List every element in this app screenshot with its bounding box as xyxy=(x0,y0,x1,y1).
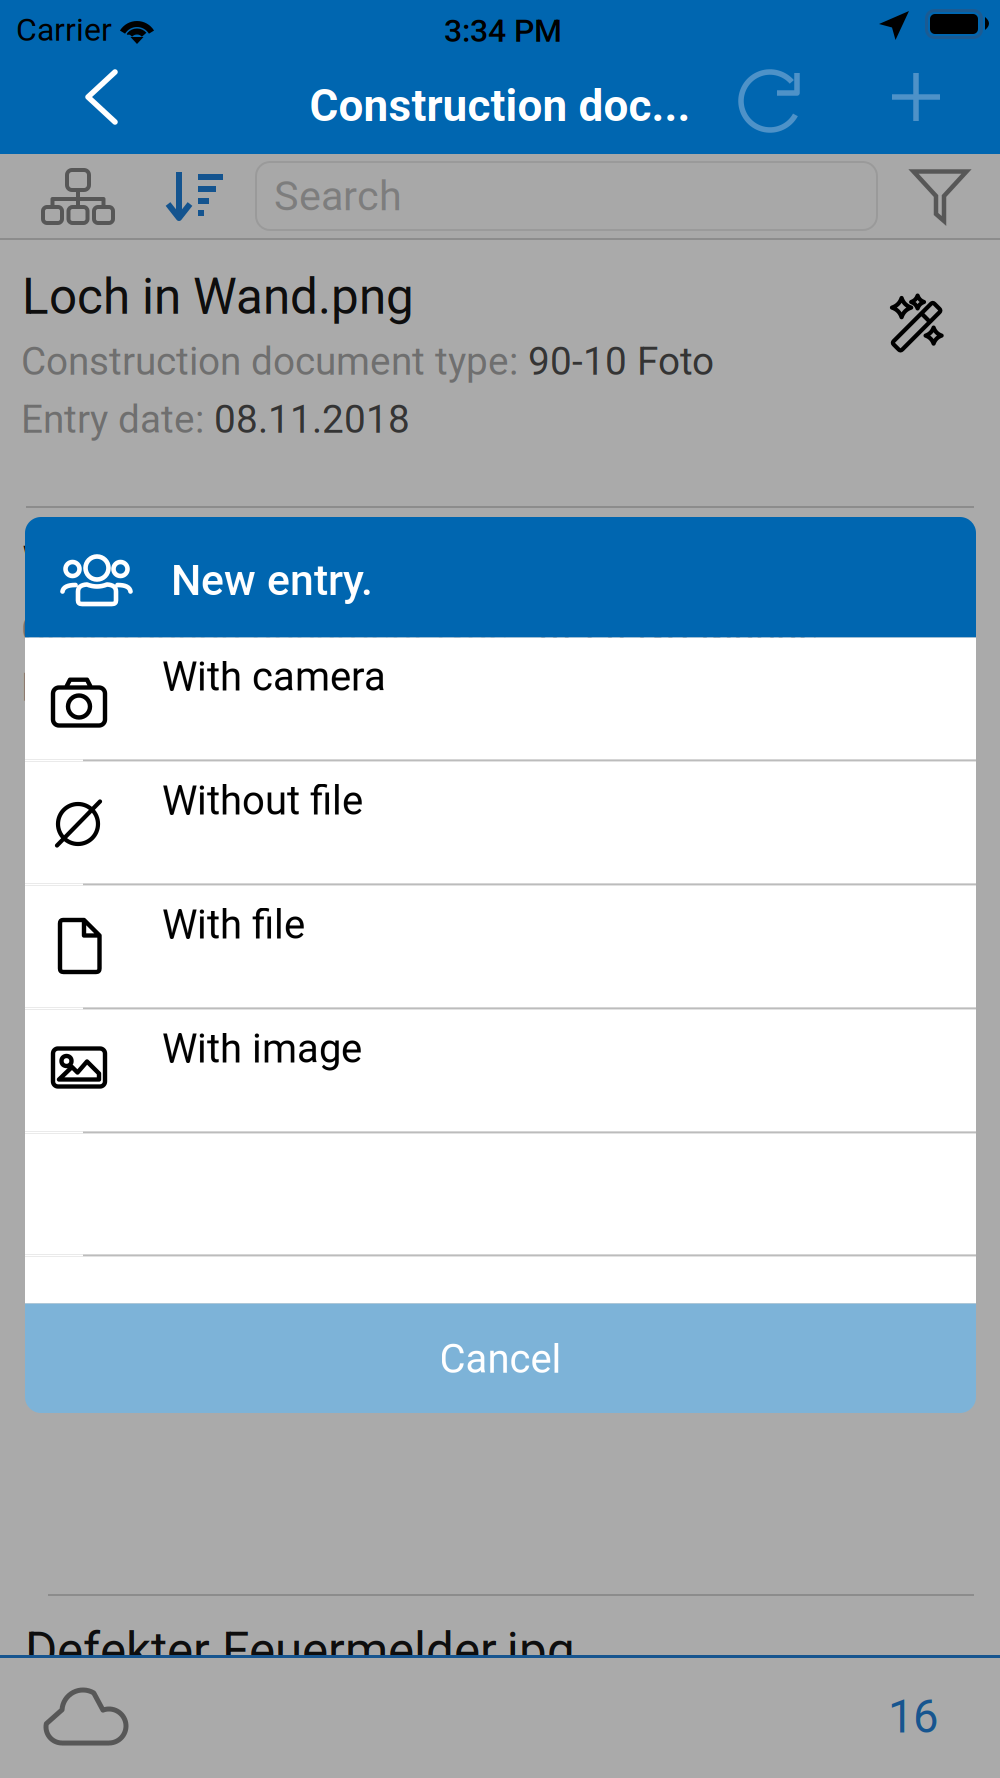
staticText: Cancel xyxy=(439,1336,561,1382)
staticText: 90-20 NU Mänge... xyxy=(528,607,849,652)
button[interactable]: Search xyxy=(255,161,878,231)
staticText: Construction document type: xyxy=(21,607,528,652)
button[interactable]: Group by hierarchy xyxy=(20,154,136,238)
staticText: New entry. xyxy=(171,555,373,605)
staticText: With file xyxy=(162,901,305,948)
staticText: 08.11.2018 xyxy=(214,397,410,442)
button[interactable]: Refresh xyxy=(722,49,822,145)
button[interactable]: 16 xyxy=(850,1667,976,1767)
staticText: Entry date: xyxy=(21,397,214,442)
button[interactable]: Wasserrohrbruch.jpg xyxy=(0,508,1000,776)
button[interactable]: Loch in Wand.png xyxy=(0,240,1000,508)
staticText: Construction doc... xyxy=(309,80,690,132)
staticText: Carrier xyxy=(16,11,112,48)
button[interactable]: Without file xyxy=(25,761,976,883)
staticText: 90-10 Foto xyxy=(528,339,714,384)
button[interactable]: Back xyxy=(52,49,152,145)
staticText: Entry date: xyxy=(21,665,214,710)
button[interactable]: With image xyxy=(25,1009,976,1131)
staticText: Loch in Wand.png xyxy=(22,268,414,326)
staticText: Wasserrohrbruch.jpg xyxy=(22,536,479,594)
staticText: Defekter Feuermelder.jpg xyxy=(25,1622,575,1680)
staticText: Search xyxy=(274,172,402,220)
button[interactable]: With file xyxy=(25,885,976,1007)
button[interactable]: With camera xyxy=(25,637,976,759)
staticText: 12.11.2018 xyxy=(214,665,410,710)
staticText: With camera xyxy=(162,653,386,700)
button[interactable]: Add xyxy=(866,49,966,145)
button[interactable]: Cloud sync xyxy=(22,1667,152,1767)
staticText: 3:34 PM xyxy=(444,12,562,49)
button[interactable]: Filter xyxy=(884,156,996,240)
staticText: Construction document type: xyxy=(21,339,528,384)
staticText: 16 xyxy=(888,1690,938,1743)
staticText: Without file xyxy=(162,777,363,824)
button[interactable]: Sort xyxy=(148,154,242,238)
button[interactable]: Cancel xyxy=(25,1303,976,1414)
staticText: With image xyxy=(162,1025,362,1072)
